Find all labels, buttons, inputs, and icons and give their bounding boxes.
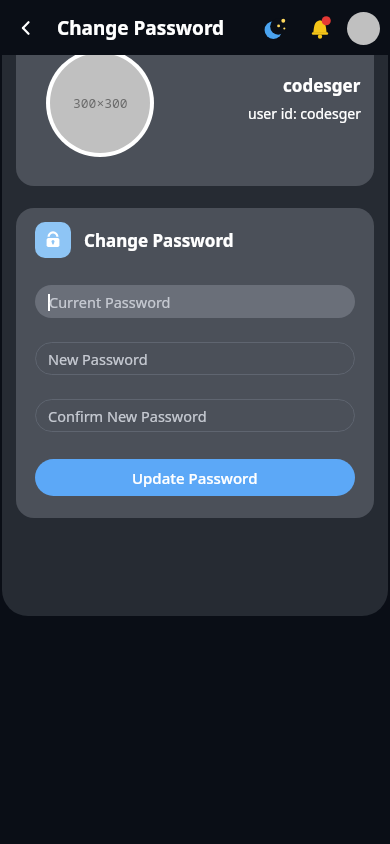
- staticText: user id: codesger: [248, 104, 361, 123]
- button[interactable]: Back: [6, 8, 46, 48]
- staticText: codesger: [283, 74, 361, 97]
- button[interactable]: Notifications: [303, 11, 337, 45]
- staticText: New Password: [48, 349, 148, 369]
- staticText: Change Password: [57, 15, 225, 41]
- staticText: Change Password: [84, 229, 234, 252]
- button[interactable]: Confirm New Password: [35, 399, 355, 432]
- staticText: Confirm New Password: [48, 406, 207, 426]
- staticText: Current Password: [49, 292, 171, 312]
- button[interactable]: Current Password: [35, 285, 355, 318]
- staticText: Update Password: [132, 468, 258, 488]
- button[interactable]: Profile: [347, 12, 380, 45]
- button[interactable]: Night mode: [259, 11, 293, 45]
- button[interactable]: New Password: [35, 342, 355, 375]
- staticText: 300×300: [73, 94, 128, 112]
- button[interactable]: Update Password: [35, 459, 355, 496]
